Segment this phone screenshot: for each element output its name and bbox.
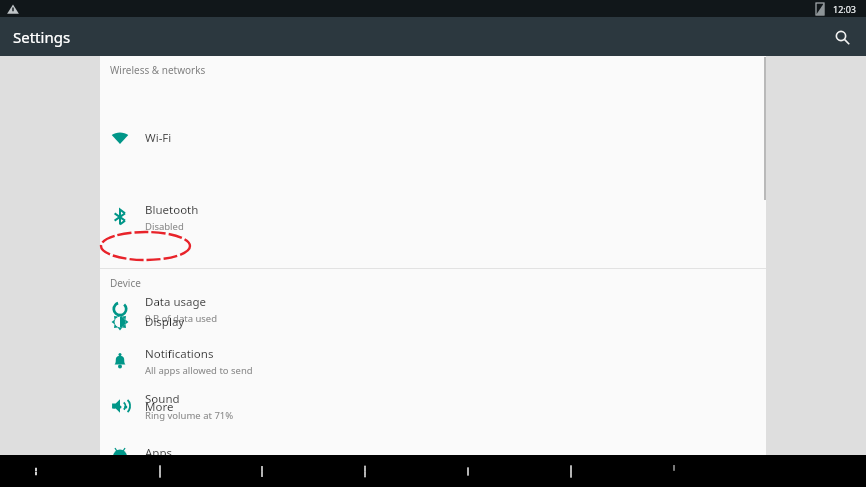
- button[interactable]: More: [100, 387, 766, 427]
- button[interactable]: Apps: [100, 433, 766, 473]
- staticText: Settings: [13, 27, 71, 47]
- staticText: Sound: [145, 391, 180, 407]
- button[interactable]: Display: [100, 302, 766, 342]
- staticText: Disabled: [145, 220, 184, 233]
- button[interactable]: Search: [824, 19, 860, 55]
- staticText: Notifications: [145, 346, 214, 362]
- staticText: Data usage: [145, 294, 207, 310]
- staticText: Wireless & networks: [110, 63, 206, 77]
- staticText: Display: [145, 314, 185, 330]
- staticText: Wi-Fi: [145, 130, 172, 146]
- button[interactable]: Data usage: [100, 286, 766, 332]
- staticText: Device: [110, 276, 141, 290]
- button[interactable]: Bluetooth: [100, 194, 766, 240]
- button[interactable]: Wi-Fi: [100, 118, 766, 158]
- staticText: All apps allowed to send: [145, 364, 253, 377]
- button[interactable]: Sound: [100, 383, 766, 429]
- staticText: Ring volume at 71%: [145, 409, 234, 422]
- staticText: 0 B of data used: [145, 312, 218, 325]
- staticText: 12:03: [833, 3, 857, 15]
- staticText: Bluetooth: [145, 202, 199, 218]
- staticText: More: [145, 399, 174, 415]
- button[interactable]: Notifications: [100, 338, 766, 384]
- staticText: Apps: [145, 445, 173, 461]
